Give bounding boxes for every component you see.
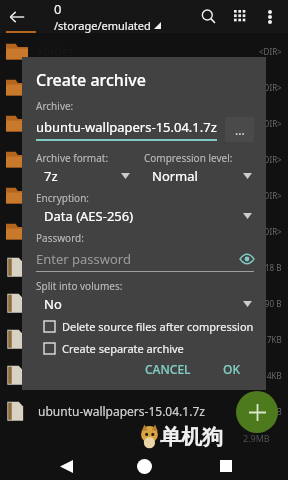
- staticText: Split into volumes:: [36, 279, 123, 293]
- button[interactable]: Back: [52, 452, 80, 480]
- staticText: Create archive: [36, 69, 146, 91]
- staticText: folder: [38, 186, 259, 204]
- staticText: CANCEL: [145, 361, 191, 377]
- button[interactable]: ubuntu-wallpapers-15.0.7z: [0, 285, 288, 321]
- staticText: Password:: [36, 231, 84, 245]
- staticText: Enter password: [36, 250, 240, 268]
- staticText: 18 B: [265, 262, 282, 273]
- staticText: folder: [38, 222, 259, 240]
- staticText: ubuntu-wallpapers-15.0.7z: [38, 331, 267, 347]
- staticText: <DIR>: [259, 82, 282, 93]
- staticText: No: [44, 295, 243, 313]
- button[interactable]: folder: [0, 33, 288, 69]
- staticText: 7KB: [267, 334, 282, 345]
- staticText: ubuntu-wallpapers-15.0.7z: [38, 295, 265, 311]
- button[interactable]: ubuntu-wallpapers-15.0.7z: [0, 357, 288, 393]
- button[interactable]: folder: [0, 177, 288, 213]
- staticText: 单机狗: [160, 424, 223, 450]
- button[interactable]: folder: [0, 141, 288, 177]
- staticText: Encryption:: [36, 191, 90, 205]
- staticText: 90 B: [265, 298, 282, 309]
- staticText: 7z: [44, 167, 121, 185]
- button[interactable]: Recents: [212, 452, 240, 480]
- button[interactable]: Add: [236, 391, 278, 433]
- staticText: folder: [38, 78, 259, 96]
- staticText: Compression level:: [144, 151, 233, 165]
- button[interactable]: OK: [215, 356, 248, 382]
- staticText: 4KB: [267, 370, 282, 381]
- staticText: folder: [38, 150, 259, 168]
- other: Show password: [240, 252, 254, 266]
- button[interactable]: Home: [130, 452, 158, 480]
- button[interactable]: Back: [0, 0, 34, 33]
- staticText: 0: [54, 0, 62, 18]
- staticText: folder: [38, 114, 259, 132]
- button[interactable]: folder: [0, 105, 288, 141]
- staticText: <DIR>: [259, 118, 282, 129]
- staticText: OK: [223, 361, 240, 377]
- button[interactable]: Normal: [144, 167, 254, 185]
- button[interactable]: ubuntu-wallpapers-15.0.7z: [0, 321, 288, 357]
- staticText: Archive format:: [36, 151, 109, 165]
- staticText: ubuntu-wallpapers-15.0.7z: [38, 367, 267, 383]
- staticText: Delete source files after compression: [62, 319, 254, 334]
- button[interactable]: Delete source files after compression: [36, 319, 254, 334]
- button[interactable]: Browse: [225, 117, 254, 142]
- staticText: Create separate archive: [62, 341, 184, 356]
- button[interactable]: Enter password: [36, 250, 254, 268]
- button[interactable]: More options: [256, 0, 284, 33]
- button[interactable]: Data (AES-256): [36, 207, 254, 225]
- button[interactable]: folder: [0, 213, 288, 249]
- staticText: ...: [235, 122, 245, 138]
- staticText: <DIR>: [259, 46, 282, 57]
- staticText: /storage/emulated: [54, 18, 151, 33]
- button[interactable]: folder: [0, 69, 288, 105]
- button[interactable]: Grid view: [224, 0, 256, 33]
- button[interactable]: No: [36, 295, 254, 313]
- button[interactable]: CANCEL: [137, 356, 199, 382]
- staticText: <DIR>: [259, 190, 282, 201]
- staticText: Normal: [152, 167, 243, 185]
- staticText: ubuntu-wallpapers-15.0.7z: [38, 259, 265, 275]
- staticText: Archive:: [36, 99, 74, 113]
- button[interactable]: 7z: [36, 167, 132, 185]
- staticText: folder: [38, 42, 259, 60]
- button[interactable]: Search: [192, 0, 224, 33]
- staticText: <DIR>: [259, 226, 282, 237]
- button[interactable]: ubuntu-wallpapers-15.04.1.7z: [0, 393, 288, 429]
- staticText: ubuntu-wallpapers-15.04.1.7z: [38, 403, 258, 419]
- staticText: ubuntu-wallpapers-15.04.1.7z: [36, 118, 217, 136]
- button[interactable]: ubuntu-wallpapers-15.0.7z: [0, 249, 288, 285]
- button[interactable]: ubuntu-wallpapers-15.04.1.7z: [36, 118, 217, 141]
- staticText: Data (AES-256): [44, 207, 243, 225]
- staticText: 2.9MB: [258, 406, 282, 417]
- staticText: 2.9MB: [243, 432, 270, 444]
- button[interactable]: Create separate archive: [36, 341, 254, 356]
- staticText: <DIR>: [259, 154, 282, 165]
